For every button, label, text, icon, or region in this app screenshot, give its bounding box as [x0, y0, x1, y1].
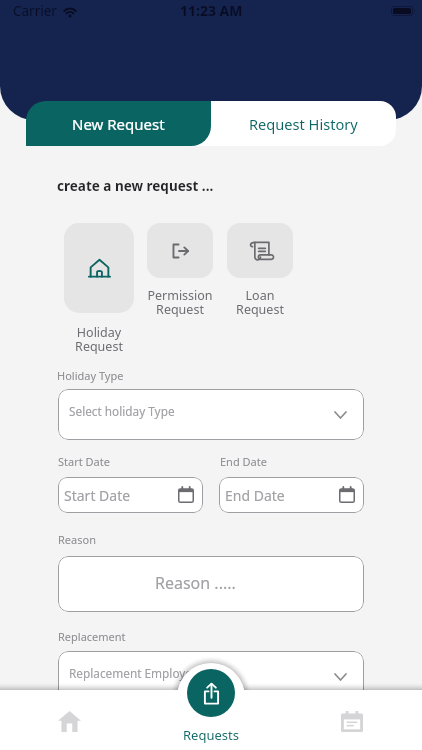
button[interactable]: Start Date [58, 477, 203, 513]
button[interactable]: Home [48, 700, 92, 746]
staticText: Loan Request [236, 287, 284, 318]
staticText: Carrier [13, 2, 57, 20]
staticText: Holiday Request [75, 324, 123, 355]
button[interactable]: Holiday Request [64, 223, 134, 355]
button[interactable]: Replacement Employee [58, 651, 364, 702]
staticText: Reason ..... [155, 572, 236, 594]
button[interactable]: Loan Request [227, 223, 293, 318]
button[interactable]: End Date [219, 477, 364, 513]
button[interactable]: Permission Request [147, 223, 213, 318]
staticText: Start Date [64, 486, 131, 505]
staticText: Holiday Type [57, 368, 124, 383]
staticText: End Date [220, 454, 267, 469]
button[interactable]: Reason ..... [58, 556, 364, 612]
staticText: Select holiday Type [69, 403, 175, 419]
button[interactable]: Calendar [330, 700, 374, 746]
button[interactable]: Select holiday Type [58, 389, 364, 440]
staticText: Request History [249, 114, 358, 134]
staticText: End Date [225, 486, 285, 505]
button[interactable]: Request History [211, 101, 396, 146]
staticText: create a new request ... [57, 177, 214, 195]
button[interactable]: New Request [26, 101, 211, 146]
staticText: Start Date [58, 454, 110, 469]
staticText: Replacement Employee [69, 665, 199, 681]
staticText: Requests [183, 726, 239, 744]
staticText: Reason [58, 532, 96, 547]
staticText: 11:23 AM [180, 1, 243, 20]
staticText: Permission Request [147, 287, 213, 318]
button[interactable]: Requests [171, 669, 251, 744]
staticText: Replacement [58, 629, 126, 644]
staticText: New Request [72, 114, 165, 134]
